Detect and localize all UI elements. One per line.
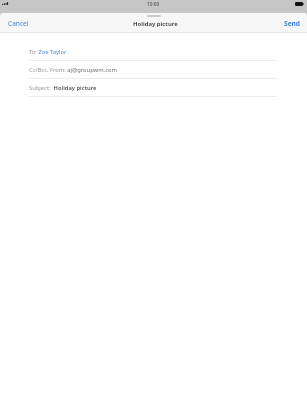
staticText: Send: [284, 19, 301, 28]
button[interactable]: Cc/Bcc, From: aj@groupwm.com: [0, 61, 307, 79]
other: Cellular signal strength: [2, 2, 8, 5]
staticText: Cancel: [8, 19, 29, 28]
staticText: Subject: Holiday picture: [29, 84, 97, 92]
button[interactable]: Cancel: [5, 16, 32, 31]
staticText: Holiday picture: [133, 20, 178, 28]
button[interactable]: Send: [281, 16, 304, 31]
button[interactable]: Subject: Holiday picture: [0, 79, 307, 97]
staticText: Cc/Bcc, From: aj@groupwm.com: [29, 66, 117, 74]
button[interactable]: To: Zoe Taylor: [0, 43, 307, 61]
staticText: 10:00: [147, 1, 160, 8]
staticText: To: Zoe Taylor: [29, 48, 67, 56]
other: Battery full: [295, 2, 304, 6]
